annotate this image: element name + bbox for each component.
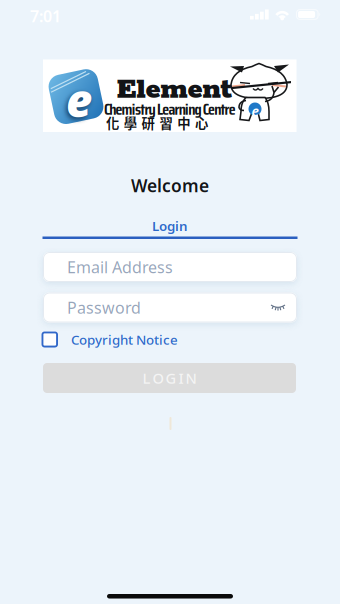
staticText: e [251,102,258,120]
button[interactable]: Password [43,292,297,322]
staticText: 7:01 [30,5,61,27]
staticText: Element [116,71,232,108]
button[interactable]: Email Address [43,252,297,282]
staticText: Copyright Notice [71,331,178,348]
staticText: 化學研習中心 [106,113,208,132]
button[interactable]: L O G I N [43,363,296,393]
button[interactable]: Login [152,217,188,235]
staticText: Welcome [131,174,209,197]
staticText: Login [152,217,188,235]
staticText: Chemistry Learning Centre [104,96,236,122]
staticText: Password [67,297,141,318]
button[interactable]: Agree to Copyright Notice [41,331,58,347]
staticText: e [66,69,92,130]
button[interactable]: Copyright Notice [71,331,178,348]
staticText: Email Address [67,256,173,278]
staticText: L O G I N [142,368,196,388]
